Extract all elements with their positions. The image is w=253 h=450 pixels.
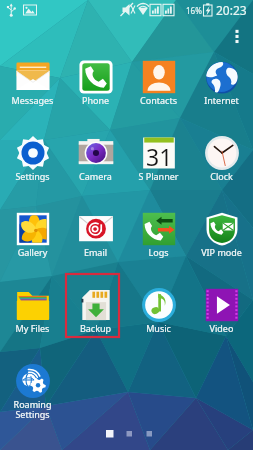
button[interactable]: Email xyxy=(64,211,127,259)
staticText: Email xyxy=(64,246,127,258)
button[interactable]: Messages xyxy=(1,59,64,107)
staticText: Settings xyxy=(1,170,64,182)
button[interactable]: Settings xyxy=(1,135,64,183)
button[interactable]: VIP mode xyxy=(190,211,253,259)
staticText: VIP mode xyxy=(190,246,253,258)
staticText: Phone xyxy=(64,94,127,106)
staticText: Backup xyxy=(64,322,127,334)
staticText: Music xyxy=(127,322,190,334)
staticText: 20:23 xyxy=(216,2,247,18)
button[interactable]: Roaming Settings xyxy=(1,363,64,422)
staticText: 16% xyxy=(186,5,202,16)
button[interactable]: More options xyxy=(226,25,248,47)
button[interactable]: Music xyxy=(127,287,190,335)
staticText: Camera xyxy=(64,170,127,182)
staticText: Messages xyxy=(1,94,64,106)
staticText: S Planner xyxy=(127,170,190,182)
button[interactable]: Backup xyxy=(64,287,127,335)
staticText: My Files xyxy=(1,322,64,334)
button[interactable]: Gallery xyxy=(1,211,64,259)
button[interactable]: S Planner xyxy=(127,135,190,183)
button[interactable]: Logs xyxy=(127,211,190,259)
staticText: 31 xyxy=(146,141,173,172)
button[interactable]: Contacts xyxy=(127,59,190,107)
button[interactable]: Video xyxy=(190,287,253,335)
button[interactable]: Internet xyxy=(190,59,253,107)
button[interactable]: Clock xyxy=(190,135,253,183)
staticText: Roaming Settings xyxy=(1,398,64,421)
staticText: Contacts xyxy=(127,94,190,106)
staticText: Internet xyxy=(190,94,253,106)
button[interactable]: My Files xyxy=(1,287,64,335)
staticText: Video xyxy=(190,322,253,334)
button[interactable]: Camera xyxy=(64,135,127,183)
staticText: Clock xyxy=(190,170,253,182)
button[interactable]: Phone xyxy=(64,59,127,107)
staticText: Logs xyxy=(127,246,190,258)
staticText: Gallery xyxy=(1,246,64,258)
